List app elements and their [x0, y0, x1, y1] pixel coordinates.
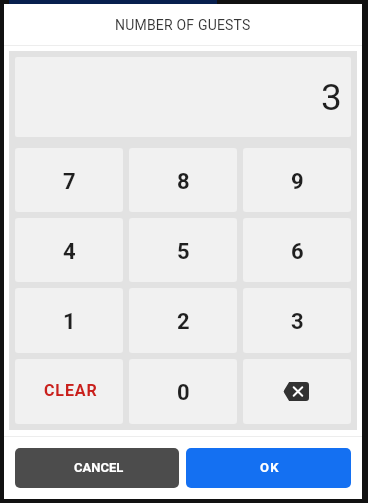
button[interactable]: 9 — [243, 148, 351, 212]
button[interactable]: 5 — [129, 218, 237, 282]
staticText: 9 — [291, 169, 304, 195]
button[interactable]: 6 — [243, 218, 351, 282]
button[interactable]: CLEAR — [15, 359, 123, 424]
staticText: 0 — [177, 380, 190, 406]
staticText: 3 — [291, 309, 304, 335]
staticText: 1 — [63, 309, 76, 335]
button[interactable]: 2 — [129, 288, 237, 353]
button[interactable]: OK — [186, 448, 351, 488]
staticText: NUMBER OF GUESTS — [115, 17, 251, 33]
staticText: CLEAR — [44, 381, 98, 400]
button[interactable]: Backspace — [243, 359, 351, 424]
button[interactable]: 8 — [129, 148, 237, 212]
staticText: 4 — [63, 239, 76, 265]
staticText: 7 — [63, 169, 76, 195]
button[interactable]: 0 — [129, 359, 237, 424]
button[interactable]: CANCEL — [15, 448, 179, 488]
button[interactable]: 7 — [15, 148, 123, 212]
staticText: 3 — [321, 76, 342, 119]
button[interactable]: 4 — [15, 218, 123, 282]
staticText: 2 — [177, 309, 190, 335]
button[interactable]: 3 — [243, 288, 351, 353]
button[interactable]: 1 — [15, 288, 123, 353]
staticText: 6 — [291, 239, 304, 265]
staticText: CANCEL — [74, 460, 124, 475]
staticText: 8 — [177, 169, 190, 195]
staticText: 5 — [177, 239, 190, 265]
staticText: OK — [260, 460, 280, 475]
